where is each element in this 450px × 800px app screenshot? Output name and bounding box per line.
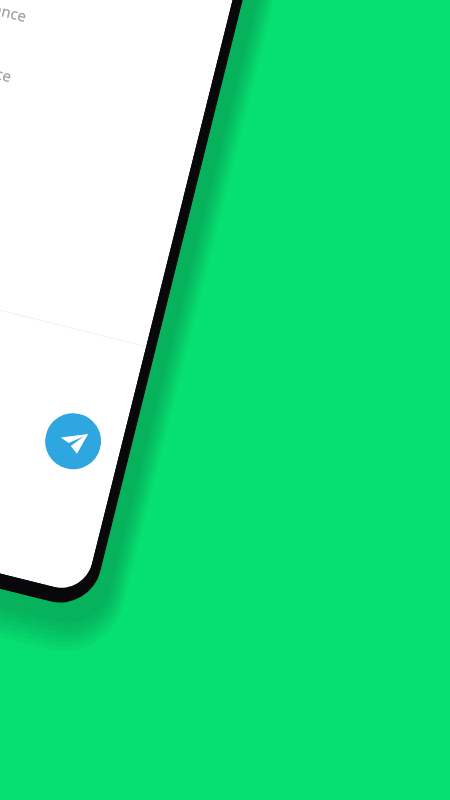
button[interactable]: Performance <box>0 0 224 94</box>
staticText: Maintenance <box>0 45 14 86</box>
button[interactable]: Appearance <box>0 199 164 335</box>
button[interactable]: Cache <box>0 284 143 417</box>
staticText: Performance <box>0 0 29 26</box>
button[interactable]: Notifications <box>0 139 179 274</box>
button[interactable]: Documents <box>0 342 129 475</box>
button[interactable]: Media <box>0 400 114 533</box>
button[interactable]: Send <box>39 407 107 475</box>
button[interactable]: Editors <box>0 79 194 214</box>
button[interactable]: Maintenance <box>0 19 209 154</box>
